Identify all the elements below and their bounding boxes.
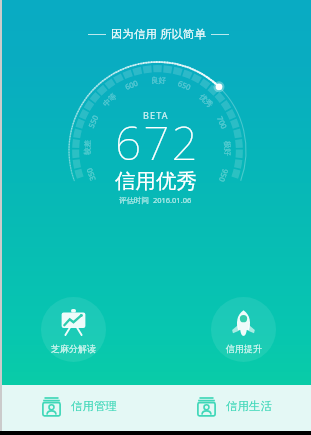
staticText: 良好 [151,76,166,85]
staticText: 672 [115,111,200,174]
button[interactable]: 信用管理 [0,385,156,431]
button[interactable]: 信用生活 [155,385,311,431]
staticText: 芝麻分解读 [51,343,96,354]
staticText: 信用提升 [226,343,262,354]
staticText: BETA [143,109,169,121]
staticText: 650 [177,78,192,92]
button[interactable]: 芝麻分解读 [41,297,106,362]
button[interactable]: 信用提升 [211,297,276,362]
staticText: 550 [86,114,100,129]
staticText: 600 [124,78,139,92]
staticText: 评估时间 2016.01.06 [119,195,192,205]
staticText: 信用管理 [71,399,117,413]
staticText: 较差 [83,140,92,155]
staticText: 极好 [223,141,232,156]
staticText: 350 [84,167,98,182]
staticText: 信用生活 [226,399,272,413]
staticText: 优秀 [197,92,214,109]
staticText: 因为信用 所以简单 [111,26,206,42]
staticText: 950 [217,168,231,183]
staticText: 信用优秀 [115,168,197,194]
staticText: 700 [215,114,229,130]
staticText: 中等 [101,92,118,108]
